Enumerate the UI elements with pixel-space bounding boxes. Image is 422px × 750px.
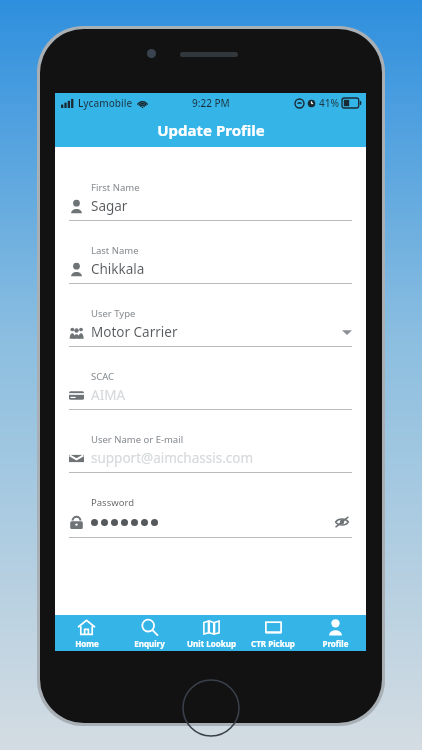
staticText: Update Profile xyxy=(157,120,265,140)
button[interactable]: First Name xyxy=(69,181,352,244)
button[interactable]: Home xyxy=(55,615,118,651)
button[interactable]: Enquiry xyxy=(118,615,180,651)
staticText: 41% xyxy=(319,96,339,110)
staticText: Password xyxy=(91,496,134,509)
staticText: SCAC xyxy=(91,370,115,383)
staticText: Sagar xyxy=(91,197,352,215)
button[interactable]: Password xyxy=(69,496,352,538)
button[interactable]: User Name or E-mail xyxy=(69,433,352,496)
staticText: User Name or E-mail xyxy=(91,433,184,446)
staticText: Unit Lookup xyxy=(187,638,236,649)
button[interactable]: Show password xyxy=(332,512,352,532)
staticText: Motor Carrier xyxy=(91,323,342,341)
button[interactable]: User Type xyxy=(69,307,352,370)
staticText: User Type xyxy=(91,307,136,320)
staticText: support@aimchassis.com xyxy=(91,449,352,467)
staticText: Enquiry xyxy=(134,638,165,649)
button[interactable]: Profile xyxy=(304,615,366,651)
button[interactable]: CTR Pickup xyxy=(242,615,304,651)
button[interactable]: Unit Lookup xyxy=(180,615,242,651)
button[interactable]: Last Name xyxy=(69,244,352,307)
staticText: Chikkala xyxy=(91,260,352,278)
staticText: AIMA xyxy=(91,386,352,404)
staticText: CTR Pickup xyxy=(251,638,295,649)
staticText: Lycamobile xyxy=(78,96,133,110)
staticText: Last Name xyxy=(91,244,139,257)
staticText: First Name xyxy=(91,181,140,194)
staticText: Home xyxy=(75,638,99,649)
staticText: Profile xyxy=(322,638,349,649)
staticText: 9:22 PM xyxy=(192,96,230,110)
button[interactable]: SCAC xyxy=(69,370,352,433)
